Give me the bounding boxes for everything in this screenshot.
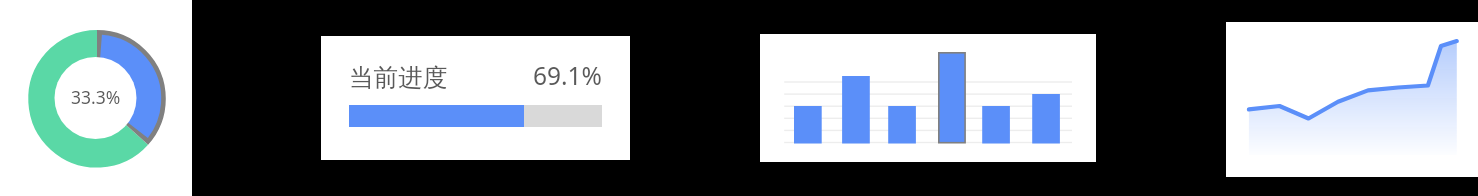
- button[interactable]: Trend line chart: [1226, 22, 1478, 177]
- button[interactable]: Bar chart: [760, 34, 1096, 162]
- button[interactable]: 当前进度: [321, 36, 630, 160]
- staticText: 当前进度: [349, 62, 448, 93]
- staticText: 33.3%: [71, 85, 121, 109]
- button[interactable]: Donut chart, 33.3 percent: [0, 0, 192, 196]
- staticText: 69.1%: [533, 59, 602, 92]
